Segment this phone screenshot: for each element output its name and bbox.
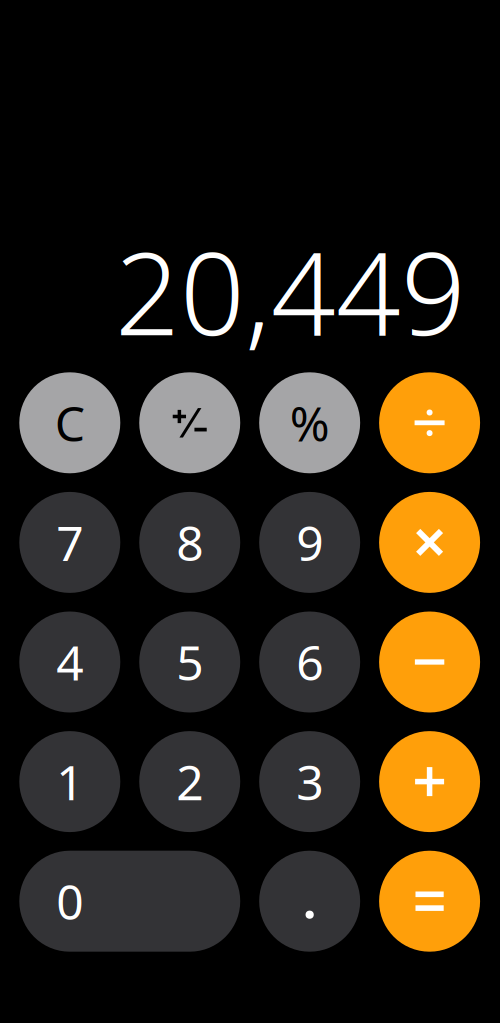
staticText: C: [55, 391, 85, 455]
button[interactable]: C: [19, 372, 120, 473]
button[interactable]: 2: [139, 731, 240, 832]
staticText: 6: [296, 630, 323, 694]
button[interactable]: Multiply: [379, 492, 480, 593]
button[interactable]: 0: [19, 851, 240, 952]
button[interactable]: %: [259, 372, 360, 473]
button[interactable]: Add: [379, 731, 480, 832]
button[interactable]: Equals: [379, 851, 480, 952]
button[interactable]: 8: [139, 492, 240, 593]
staticText: %: [290, 391, 330, 455]
staticText: 20,449: [115, 216, 466, 366]
button[interactable]: 4: [19, 611, 120, 712]
button[interactable]: 7: [19, 492, 120, 593]
staticText: 9: [296, 510, 323, 574]
button[interactable]: Decimal point: [259, 851, 360, 952]
button[interactable]: Divide: [379, 372, 480, 473]
button[interactable]: 9: [259, 492, 360, 593]
button[interactable]: Plus minus: [139, 372, 240, 473]
button[interactable]: 5: [139, 611, 240, 712]
button[interactable]: Subtract: [379, 611, 480, 712]
staticText: 5: [176, 630, 203, 694]
staticText: 7: [56, 510, 83, 574]
staticText: 2: [176, 750, 203, 813]
staticText: 8: [176, 510, 203, 574]
staticText: 4: [56, 630, 83, 694]
staticText: 3: [296, 750, 323, 813]
staticText: 0: [56, 869, 83, 933]
button[interactable]: 1: [19, 731, 120, 832]
button[interactable]: 3: [259, 731, 360, 832]
staticText: 1: [56, 750, 83, 813]
button[interactable]: 6: [259, 611, 360, 712]
